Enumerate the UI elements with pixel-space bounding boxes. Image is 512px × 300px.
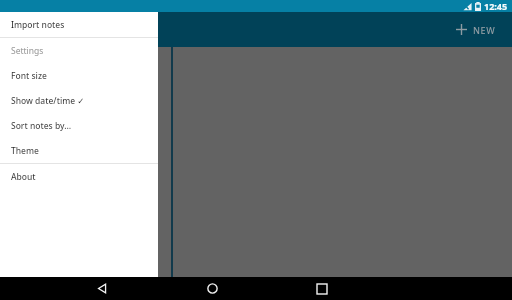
button[interactable]: Sort notes by… (0, 113, 158, 138)
button[interactable]: NEW (451, 19, 500, 40)
button[interactable]: Font size (0, 63, 158, 88)
button[interactable]: Recent apps (307, 277, 337, 300)
button[interactable]: Back (87, 277, 117, 300)
staticText: Show date/time ✓ (11, 95, 85, 107)
button[interactable]: Show date/time ✓ (0, 88, 158, 113)
staticText: About (11, 171, 36, 183)
button[interactable]: About (0, 164, 158, 189)
staticText: 12:45 (484, 0, 508, 12)
staticText: Sort notes by… (11, 120, 72, 132)
staticText: Import notes (11, 19, 65, 31)
staticText: Theme (11, 145, 39, 157)
staticText: Font size (11, 70, 47, 82)
staticText: NEW (473, 24, 496, 36)
button[interactable]: Home (197, 277, 227, 300)
button[interactable]: Theme (0, 138, 158, 163)
staticText: Settings (11, 45, 44, 57)
button[interactable]: Import notes (0, 12, 158, 37)
